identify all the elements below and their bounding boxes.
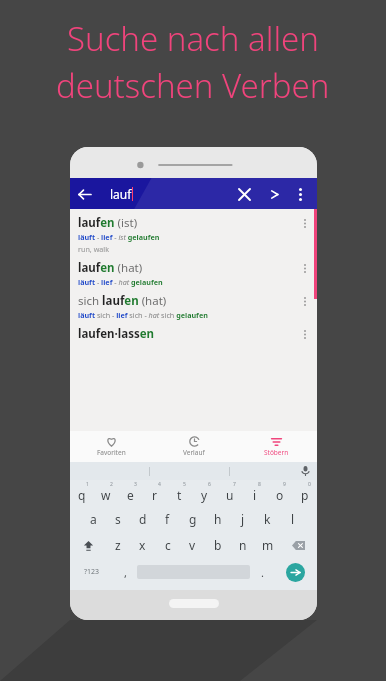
button[interactable]: 8 [242,480,267,506]
staticText: läuft - lief - hat gelaufen [78,277,163,287]
staticText: 3 [134,481,137,488]
button[interactable]: 4 [142,480,167,506]
button[interactable]: , [113,558,137,586]
button[interactable]: 1 [70,480,94,506]
button[interactable]: h [205,506,230,532]
button[interactable]: 6 [192,480,217,506]
button[interactable]: a [81,506,105,532]
staticText: x [139,537,146,553]
staticText: läuft sich - lief sich - hat sich gelauf… [78,310,208,320]
staticText: run, walk [78,244,110,254]
button[interactable]: Back [70,180,98,208]
button[interactable]: j [230,506,255,532]
staticText: a [90,511,97,527]
staticText: laufen·lassen [78,326,155,342]
staticText: 7 [233,481,236,488]
button[interactable]: x [130,532,155,558]
staticText: laufen (ist) [78,215,138,231]
button[interactable]: c [155,532,180,558]
button[interactable]: Verlauf [153,431,235,462]
button[interactable]: g [180,506,205,532]
button[interactable]: d [130,506,155,532]
button[interactable]: laufen (hat) [70,254,317,287]
button[interactable]: z [106,532,130,558]
button[interactable]: 3 [118,480,142,506]
button[interactable]: Stöbern [235,431,317,462]
staticText: n [239,537,247,553]
staticText: 8 [258,481,261,488]
staticText: 6 [208,481,211,488]
staticText: Favoriten [97,448,126,457]
button[interactable]: 2 [94,480,118,506]
button[interactable]: laufen·lassen [70,320,317,342]
button[interactable]: Item menu [297,293,313,309]
staticText: z [115,537,121,553]
staticText: o [276,487,284,503]
button[interactable]: 0 [292,480,317,506]
button[interactable]: v [180,532,205,558]
staticText: c [165,537,171,553]
staticText: h [214,511,222,527]
button[interactable]: Next [261,181,287,207]
button[interactable]: Voice input [293,462,317,480]
staticText: m [262,537,274,553]
staticText: t [177,487,182,503]
button[interactable]: Home [169,599,219,608]
staticText: 2 [110,481,113,488]
staticText: g [189,511,197,527]
staticText: y [201,487,208,503]
staticText: e [127,487,134,503]
button[interactable]: Favoriten [70,431,153,462]
staticText: laufen (hat) [78,260,143,276]
staticText: i [253,487,257,503]
staticText: Stöbern [264,448,289,457]
staticText: f [165,511,170,527]
staticText: v [189,537,196,553]
staticText: d [139,511,147,527]
button[interactable]: Item menu [297,215,313,231]
staticText: sich laufen (hat) [78,293,167,309]
button[interactable]: f [155,506,180,532]
staticText: 9 [283,481,286,488]
staticText: 1 [86,481,89,488]
staticText: 4 [158,481,161,488]
staticText: p [301,487,309,503]
button[interactable]: l [280,506,305,532]
button[interactable]: m [255,532,280,558]
staticText: k [264,511,271,527]
staticText: q [78,487,86,503]
staticText: u [226,487,234,503]
button[interactable]: 7 [217,480,242,506]
button[interactable]: Clear [231,181,257,207]
button[interactable]: Shift [70,532,106,558]
button[interactable]: More options [287,181,313,207]
staticText: j [241,511,245,527]
staticText: b [214,537,222,553]
button[interactable]: Item menu [297,326,313,342]
staticText: ?123 [84,567,100,577]
staticText: 0 [308,481,311,488]
button[interactable]: Enter [274,558,317,586]
button[interactable]: Backspace [280,532,317,558]
button[interactable]: laufen (ist) [70,209,317,254]
staticText: 5 [183,481,186,488]
staticText: Verlauf [183,448,205,457]
button[interactable]: . [250,558,274,586]
button[interactable]: 5 [167,480,192,506]
button[interactable]: n [230,532,255,558]
button[interactable]: sich laufen (hat) [70,287,317,320]
button[interactable]: 9 [267,480,292,506]
staticText: w [101,487,111,503]
staticText: deutschen Verben [56,63,330,108]
staticText: s [115,511,121,527]
button[interactable]: k [255,506,280,532]
staticText: l [291,511,295,527]
button[interactable]: b [205,532,230,558]
button[interactable]: ?123 [70,558,113,586]
button[interactable]: Item menu [297,260,313,276]
button[interactable]: s [105,506,130,532]
